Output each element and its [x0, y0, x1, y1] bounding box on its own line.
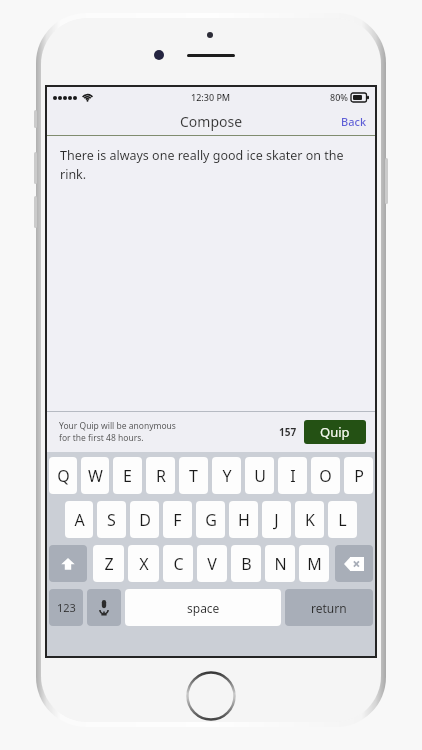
- staticText: U: [254, 465, 266, 487]
- button[interactable]: L: [328, 501, 357, 538]
- staticText: J: [274, 509, 279, 531]
- staticText: Quip: [320, 423, 350, 441]
- button[interactable]: R: [146, 457, 175, 494]
- staticText: E: [123, 465, 132, 487]
- button[interactable]: Backspace: [335, 545, 373, 582]
- button[interactable]: W: [81, 457, 109, 494]
- button[interactable]: G: [196, 501, 225, 538]
- staticText: C: [173, 553, 184, 575]
- staticText: F: [173, 509, 182, 531]
- button[interactable]: U: [245, 457, 274, 494]
- button[interactable]: H: [229, 501, 258, 538]
- staticText: P: [354, 465, 364, 487]
- button[interactable]: Z: [93, 545, 124, 582]
- button[interactable]: P: [344, 457, 373, 494]
- staticText: T: [189, 465, 198, 487]
- staticText: Your Quip will be anonymous for the firs…: [59, 420, 176, 444]
- staticText: Compose: [180, 112, 243, 131]
- staticText: L: [338, 509, 347, 531]
- staticText: B: [241, 553, 252, 575]
- button[interactable]: I: [278, 457, 307, 494]
- staticText: X: [139, 553, 149, 575]
- staticText: D: [139, 509, 151, 531]
- staticText: A: [74, 509, 85, 531]
- staticText: V: [207, 553, 217, 575]
- button[interactable]: B: [231, 545, 261, 582]
- button[interactable]: X: [128, 545, 159, 582]
- button[interactable]: Quip: [304, 420, 366, 444]
- button[interactable]: Y: [212, 457, 241, 494]
- staticText: M: [307, 553, 322, 575]
- staticText: S: [107, 509, 116, 531]
- staticText: 80%: [330, 91, 348, 103]
- button[interactable]: M: [299, 545, 329, 582]
- button[interactable]: Dictate: [87, 589, 121, 626]
- button[interactable]: space: [125, 589, 281, 626]
- button[interactable]: A: [65, 501, 93, 538]
- button[interactable]: D: [130, 501, 159, 538]
- button[interactable]: There is always one really good ice skat…: [47, 136, 375, 411]
- button[interactable]: Shift: [49, 545, 87, 582]
- staticText: R: [156, 465, 166, 487]
- staticText: W: [88, 465, 103, 487]
- button[interactable]: F: [163, 501, 192, 538]
- staticText: 123: [57, 600, 76, 615]
- staticText: K: [305, 509, 315, 531]
- staticText: Z: [104, 553, 114, 575]
- staticText: 12:30 PM: [191, 91, 231, 103]
- button[interactable]: E: [113, 457, 142, 494]
- button[interactable]: T: [179, 457, 208, 494]
- staticText: G: [205, 509, 217, 531]
- staticText: O: [319, 465, 332, 487]
- staticText: 157: [279, 425, 297, 439]
- button[interactable]: V: [197, 545, 227, 582]
- button[interactable]: C: [163, 545, 193, 582]
- staticText: There is always one really good ice skat…: [60, 147, 357, 183]
- button[interactable]: Back: [333, 109, 375, 134]
- button[interactable]: K: [295, 501, 324, 538]
- button[interactable]: Q: [49, 457, 77, 494]
- staticText: Q: [57, 465, 70, 487]
- button[interactable]: S: [97, 501, 126, 538]
- button[interactable]: J: [262, 501, 291, 538]
- staticText: space: [187, 600, 220, 616]
- button[interactable]: return: [285, 589, 373, 626]
- staticText: H: [238, 509, 250, 531]
- button[interactable]: N: [265, 545, 295, 582]
- staticText: return: [311, 600, 347, 616]
- button[interactable]: O: [311, 457, 340, 494]
- staticText: N: [274, 553, 287, 575]
- button[interactable]: 123: [49, 589, 83, 626]
- staticText: I: [290, 465, 296, 487]
- staticText: Y: [222, 465, 232, 487]
- staticText: Back: [341, 114, 367, 129]
